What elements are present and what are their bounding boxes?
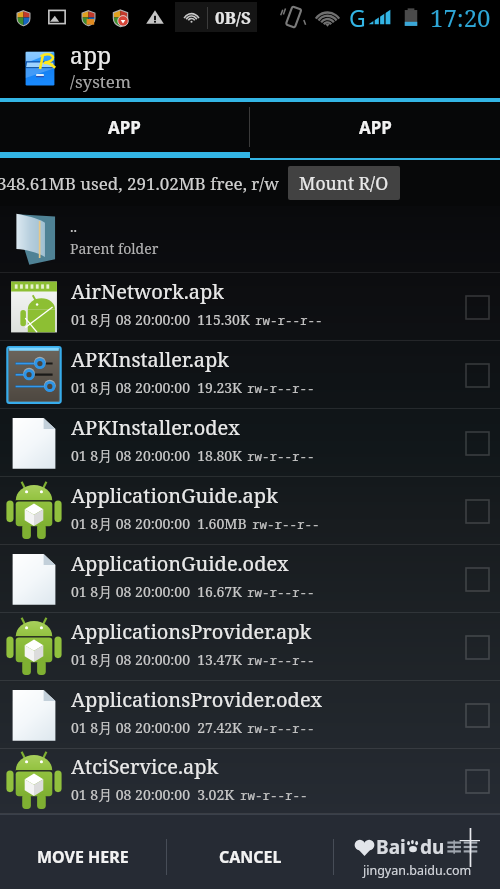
staticText: CANCEL [219,846,282,868]
staticText: 0B/S [215,6,251,29]
staticText: Bai [376,834,406,860]
staticText: rw-r--r-- [252,516,320,533]
staticText: Mount R/O [299,171,389,195]
button[interactable]: AirNetwork.apk [0,273,500,341]
button[interactable]: Select AtciService.apk [455,759,499,803]
staticText: AirNetwork.apk [71,278,225,305]
staticText: rw-r--r-- [247,720,315,737]
staticText: 01 8月 08 20:00:00 3.02K [71,785,235,804]
staticText: 01 8月 08 20:00:00 27.42K [71,718,242,737]
staticText: rw-r--r-- [247,652,315,669]
staticText: 01 8月 08 20:00:00 1.60MB [71,514,247,533]
button[interactable]: APP [0,102,249,152]
staticText: APP [108,116,141,139]
staticText: APKInstaller.odex [71,414,240,441]
staticText: ApplicationGuide.odex [71,550,289,577]
button[interactable]: MOVE HERE [0,819,166,889]
staticText: 348.61MB used, 291.02MB free, r/w [0,172,279,195]
button[interactable]: ApplicationsProvider.apk [0,613,500,681]
button[interactable]: Select ApplicationGuide.apk [455,489,499,533]
button[interactable]: APKInstaller.apk [0,341,500,409]
staticText: 01 8月 08 20:00:00 19.23K [71,378,242,397]
staticText: 01 8月 08 20:00:00 115.30K [71,310,250,329]
button[interactable]: Select ApplicationsProvider.apk [455,625,499,669]
staticText: G [349,2,366,33]
staticText: 01 8月 08 20:00:00 16.67K [71,582,242,601]
staticText: jingyan.baidu.com [363,862,472,879]
button[interactable]: APP [250,102,500,152]
staticText: 01 8月 08 20:00:00 18.80K [71,446,242,465]
staticText: ApplicationGuide.apk [71,482,278,509]
button[interactable]: ApplicationsProvider.odex [0,681,500,749]
button[interactable]: Select ApplicationsProvider.odex [455,693,499,737]
button[interactable]: app [0,34,131,102]
button[interactable]: Select ApplicationGuide.odex [455,557,499,601]
staticText: APKInstaller.apk [71,346,229,373]
button[interactable]: Select APKInstaller.apk [455,353,499,397]
button[interactable]: AtciService.apk [0,749,500,814]
staticText: /system [70,70,131,93]
staticText: ApplicationsProvider.apk [71,618,312,645]
staticText: rw-r--r-- [247,584,315,601]
button[interactable]: CANCEL [167,819,333,889]
staticText: MOVE HERE [37,846,129,868]
staticText: 01 8月 08 20:00:00 13.47K [71,650,242,669]
button[interactable]: Select AirNetwork.apk [455,285,499,329]
staticText: ApplicationsProvider.odex [71,686,323,713]
staticText: AtciService.apk [71,753,219,780]
button[interactable]: APKInstaller.odex [0,409,500,477]
staticText: APP [359,116,392,139]
staticText: rw-r--r-- [240,787,308,804]
staticText: du [420,834,445,860]
button[interactable]: .. [0,206,500,273]
staticText: app [70,39,112,70]
button[interactable]: Select APKInstaller.odex [455,421,499,465]
staticText: 17:20 [430,1,491,34]
staticText: rw-r--r-- [255,312,323,329]
staticText: Parent folder [70,239,159,258]
button[interactable]: ApplicationGuide.odex [0,545,500,613]
staticText: rw-r--r-- [247,380,315,397]
staticText: .. [70,217,77,236]
button[interactable]: Mount R/O [288,166,400,200]
button[interactable]: ApplicationGuide.apk [0,477,500,545]
staticText: rw-r--r-- [247,448,315,465]
